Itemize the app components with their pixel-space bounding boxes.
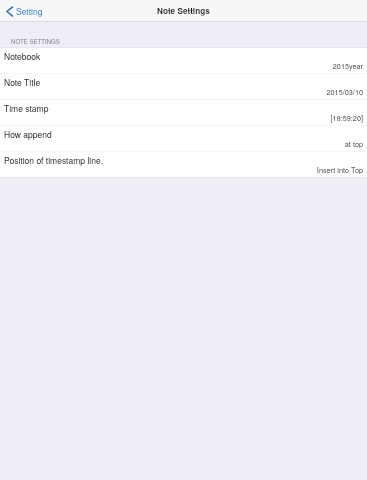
staticText: 2015/03/10 bbox=[326, 87, 363, 97]
staticText: Note Title bbox=[4, 76, 41, 88]
staticText: Time stamp bbox=[4, 102, 49, 114]
staticText: NOTE SETTINGS bbox=[11, 37, 60, 46]
staticText: Note Title bbox=[4, 76, 41, 88]
staticText: [18:59:20] bbox=[330, 113, 363, 123]
staticText: [18:59:20] bbox=[330, 113, 363, 123]
staticText: Setting bbox=[16, 5, 43, 17]
staticText: How append bbox=[4, 128, 52, 140]
staticText: 2015/03/10 bbox=[326, 87, 363, 97]
staticText: Insert into Top bbox=[316, 165, 363, 175]
button[interactable]: Note Title bbox=[0, 74, 367, 100]
staticText: at top bbox=[344, 139, 363, 149]
other: Back bbox=[6, 6, 14, 17]
staticText: Time stamp bbox=[4, 102, 49, 114]
staticText: 2015year bbox=[332, 61, 363, 71]
staticText: 2015year bbox=[332, 61, 363, 71]
button[interactable]: Notebook bbox=[0, 48, 367, 74]
button[interactable]: Time stamp bbox=[0, 100, 367, 126]
staticText: Notebook bbox=[4, 50, 41, 62]
button[interactable]: How append bbox=[0, 126, 367, 152]
staticText: How append bbox=[4, 128, 52, 140]
staticText: Position of timestamp line. bbox=[4, 154, 103, 166]
staticText: Notebook bbox=[4, 50, 41, 62]
button[interactable]: Position of timestamp line. bbox=[0, 152, 367, 178]
staticText: Insert into Top bbox=[316, 165, 363, 175]
staticText: Position of timestamp line. bbox=[4, 154, 103, 166]
staticText: Note Settings bbox=[157, 5, 210, 17]
button[interactable]: Back bbox=[0, 5, 48, 17]
staticText: at top bbox=[344, 139, 363, 149]
